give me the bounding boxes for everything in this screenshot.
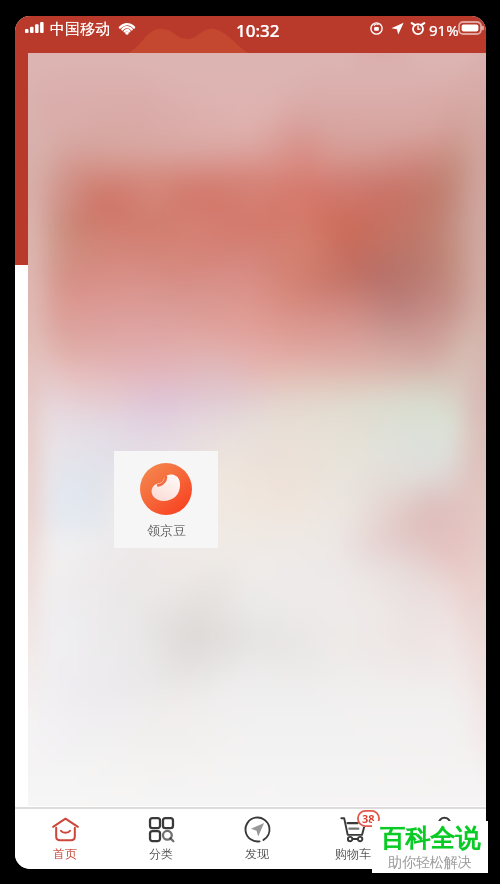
staticText: 38 [362, 811, 375, 826]
staticText: 10:32 [236, 19, 280, 42]
staticText: 发现 [245, 846, 269, 861]
button[interactable]: 我的 [401, 809, 486, 869]
staticText: 领京豆 [147, 522, 186, 538]
button[interactable]: 首页 [17, 809, 113, 869]
staticText: 我的 [433, 846, 457, 861]
staticText: 中国移动 [50, 20, 110, 39]
staticText: 91% [429, 20, 459, 40]
button[interactable]: 发现 [209, 809, 305, 869]
button[interactable]: 领京豆 [114, 451, 218, 548]
staticText: 百科全说 [380, 823, 480, 854]
staticText: 助你轻松解决 [388, 854, 472, 872]
button[interactable]: 分类 [113, 809, 209, 869]
button[interactable]: 38 [305, 809, 401, 869]
staticText: 购物车 [335, 846, 371, 861]
staticText: 首页 [53, 846, 77, 861]
staticText: 分类 [149, 846, 173, 861]
